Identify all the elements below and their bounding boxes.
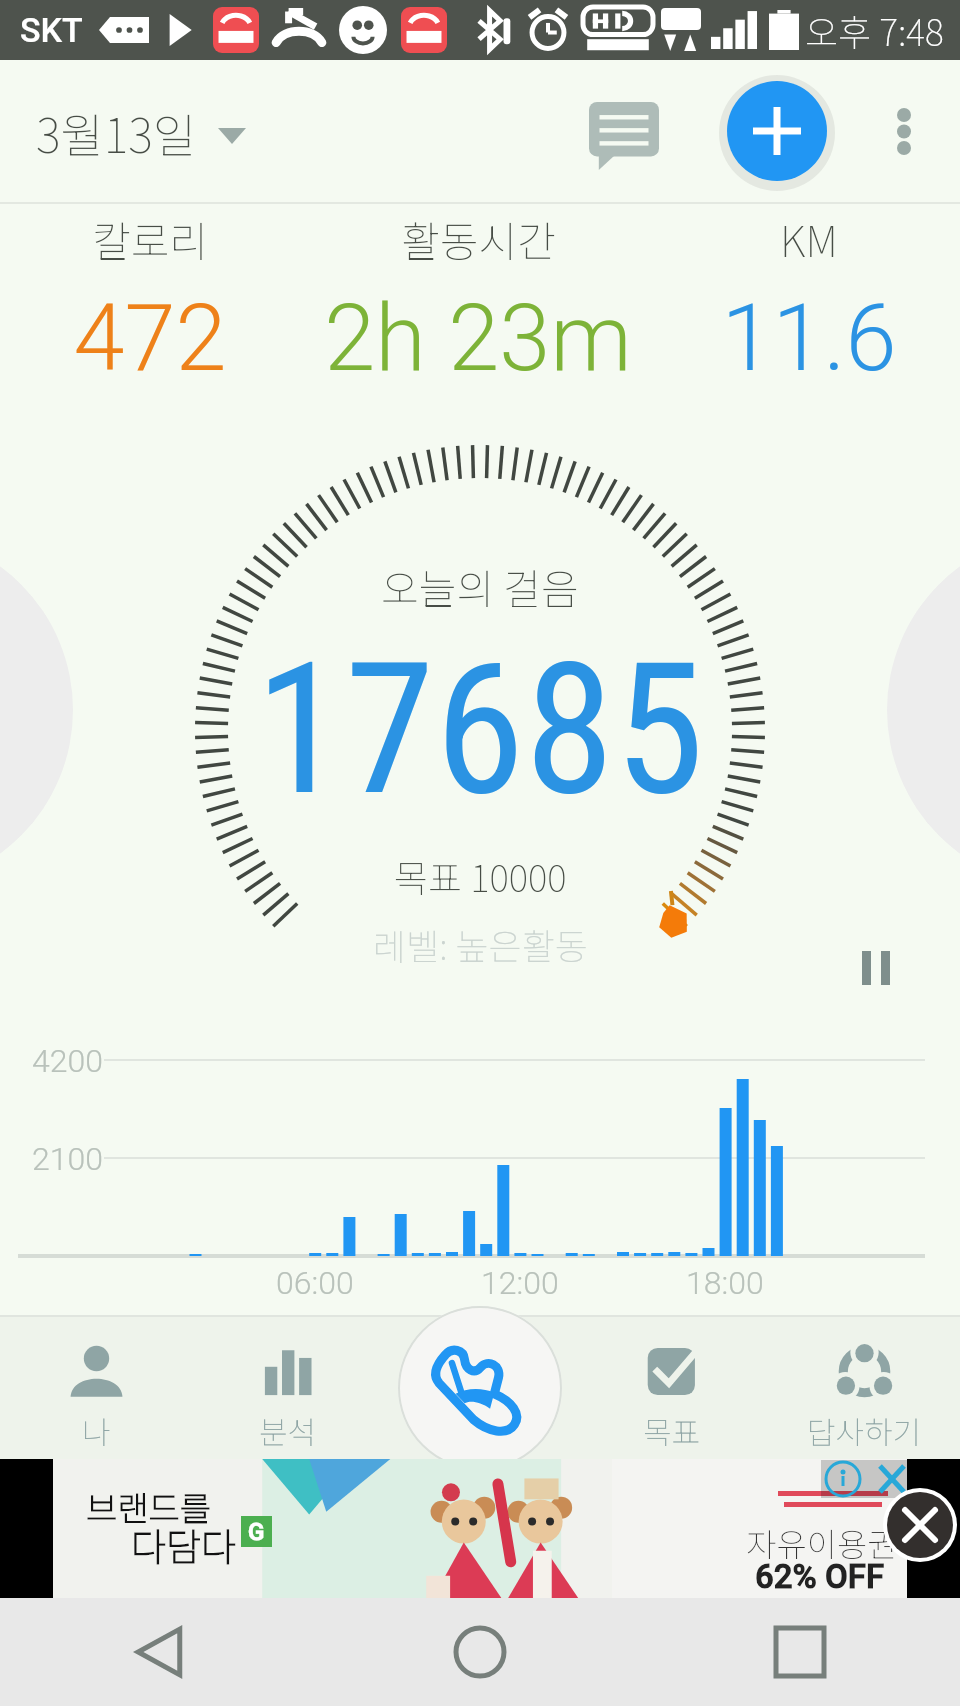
button[interactable]: 칼로리 <box>0 208 320 384</box>
staticText: 4200 <box>32 1042 103 1080</box>
staticText: SKT <box>20 10 83 50</box>
staticText: 17685 <box>255 623 705 836</box>
staticText: 활동시간 <box>401 208 556 269</box>
staticText: 472 <box>73 285 227 393</box>
button[interactable]: 3월13일 <box>0 74 274 190</box>
button[interactable]: More options <box>854 81 954 181</box>
button[interactable]: Messages <box>569 76 679 186</box>
staticText: 나 <box>82 1408 111 1453</box>
button[interactable]: Add <box>713 67 841 195</box>
staticText: 분석 <box>259 1408 317 1453</box>
staticText: 오늘의 걸음 <box>381 556 579 615</box>
button[interactable]: KM <box>639 208 960 384</box>
staticText: 2h 23m <box>324 285 632 393</box>
button[interactable]: 나 <box>0 1316 192 1459</box>
staticText: 오후 7:48 <box>805 4 944 56</box>
staticText: 레벨: 높은활동 <box>373 918 588 970</box>
staticText: 목표 <box>643 1408 701 1453</box>
staticText: 11.6 <box>721 285 897 393</box>
button[interactable]: Steps <box>398 1306 562 1470</box>
staticText: 3월13일 <box>36 98 196 166</box>
staticText: 목표 10000 <box>394 849 567 903</box>
button[interactable]: 분석 <box>192 1316 384 1459</box>
button[interactable]: 답사하기 <box>768 1316 960 1459</box>
staticText: G <box>248 1518 265 1546</box>
button[interactable]: Close ad <box>887 1492 953 1558</box>
staticText: 자유이용권 <box>746 1519 898 1567</box>
staticText: 답사하기 <box>807 1408 922 1453</box>
staticText: KM <box>780 208 838 269</box>
button[interactable]: Recent apps <box>640 1598 960 1706</box>
staticText: 18:00 <box>686 1264 764 1302</box>
staticText: 브랜드를 <box>86 1482 212 1531</box>
staticText: 62% OFF <box>755 1557 885 1596</box>
button[interactable]: Back <box>0 1598 320 1706</box>
staticText: 칼로리 <box>92 208 208 269</box>
button[interactable]: Home <box>320 1598 640 1706</box>
button[interactable]: 활동시간 <box>308 208 648 384</box>
staticText: 다담다 <box>131 1517 236 1572</box>
staticText: 06:00 <box>276 1264 354 1302</box>
button[interactable]: 목표 <box>576 1316 768 1459</box>
button[interactable]: Ad info <box>823 1461 911 1497</box>
button[interactable]: 브랜드를 <box>53 1459 907 1598</box>
button[interactable]: Pause <box>836 928 916 1008</box>
staticText: 2100 <box>32 1140 103 1178</box>
staticText: 12:00 <box>481 1264 559 1302</box>
